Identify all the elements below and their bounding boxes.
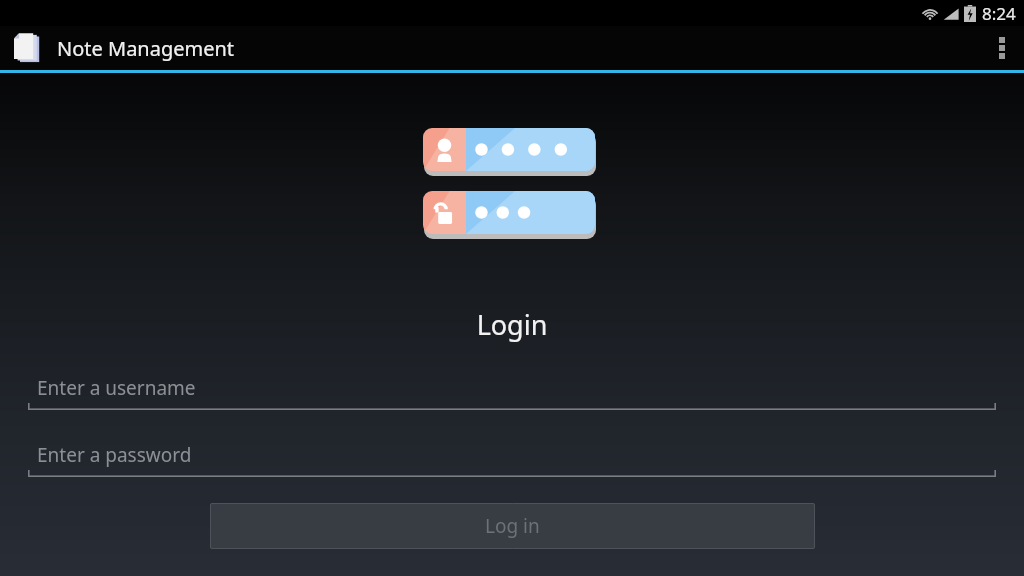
button[interactable]: Log in (210, 503, 815, 549)
staticText: Enter a username (37, 375, 196, 401)
staticText: Login (0, 306, 1024, 343)
staticText: Enter a password (37, 442, 192, 468)
staticText: Log in (485, 513, 540, 539)
button[interactable]: Enter a username (28, 374, 996, 410)
staticText: Note Management (57, 35, 235, 62)
button[interactable]: Enter a password (28, 441, 996, 477)
button[interactable]: More options (980, 26, 1024, 70)
staticText: 8:24 (982, 2, 1016, 25)
